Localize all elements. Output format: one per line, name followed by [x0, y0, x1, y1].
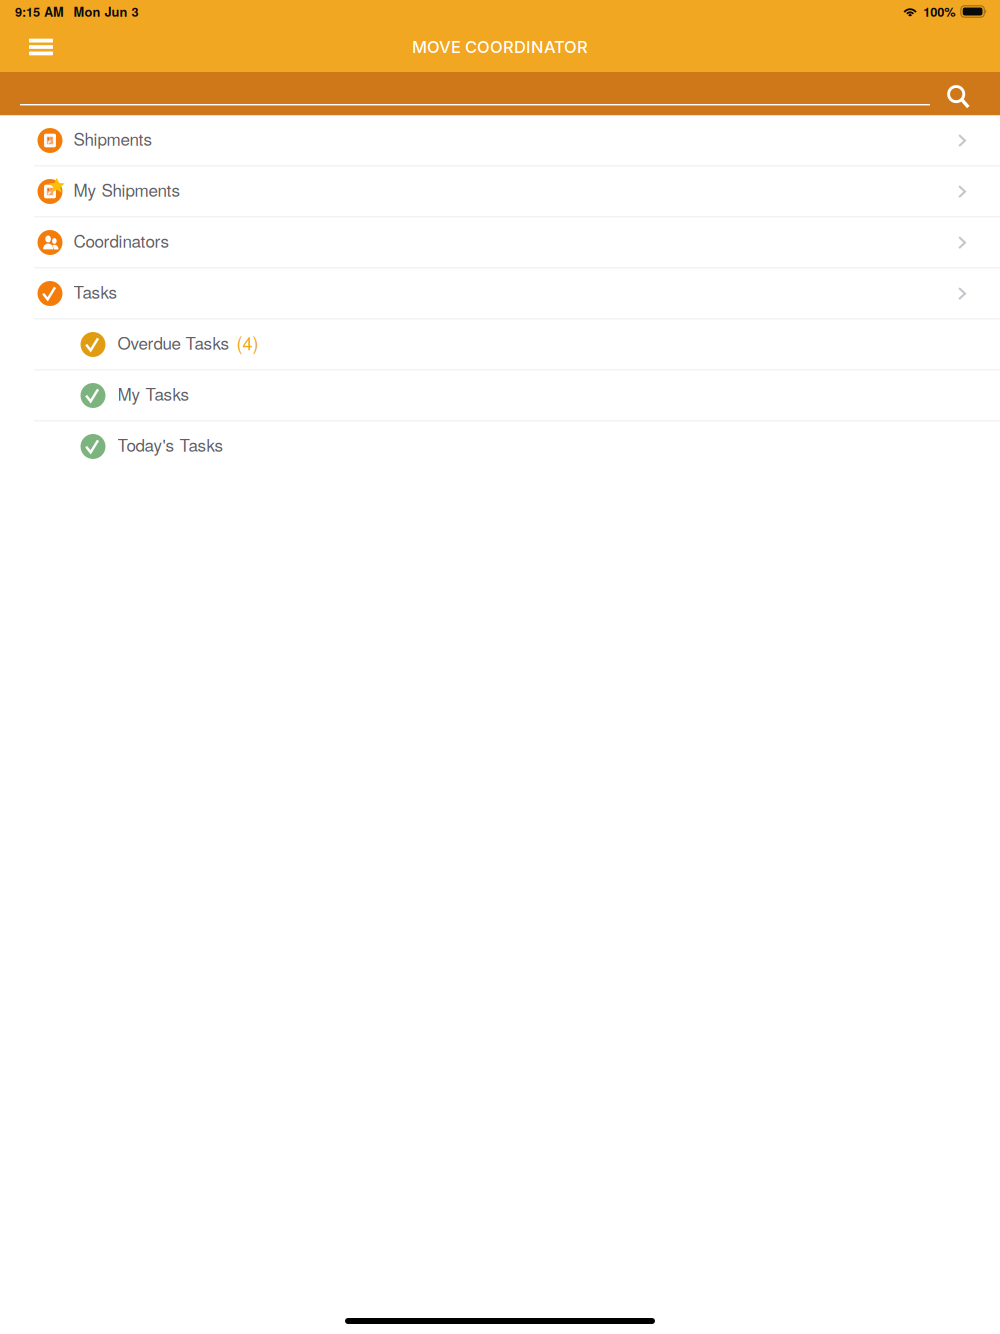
staticText: My Shipments: [73, 177, 180, 202]
button[interactable]: My Tasks: [0, 370, 1000, 420]
button[interactable]: Menu: [0, 26, 69, 72]
button[interactable]: Coordinators: [0, 217, 1000, 267]
button[interactable]: Tasks: [0, 268, 1000, 318]
button[interactable]: Shipments: [0, 115, 1000, 165]
staticText: Tasks: [73, 279, 117, 304]
button[interactable]: Search: [935, 75, 1000, 112]
staticText: Shipments: [73, 126, 152, 151]
staticText: 100%: [923, 2, 955, 21]
staticText: (4): [236, 329, 258, 355]
staticText: MOVE COORDINATOR: [412, 37, 588, 57]
staticText: Today's Tasks: [117, 432, 223, 457]
staticText: Mon Jun 3: [73, 2, 138, 21]
button[interactable]: Today's Tasks: [0, 421, 1000, 471]
staticText: My Tasks: [117, 381, 189, 406]
button[interactable]: My Shipments: [0, 166, 1000, 216]
staticText: Overdue Tasks: [117, 330, 229, 355]
staticText: Coordinators: [73, 228, 169, 253]
button[interactable]: Overdue Tasks: [0, 319, 1000, 369]
staticText: 9:15 AM: [15, 2, 64, 21]
